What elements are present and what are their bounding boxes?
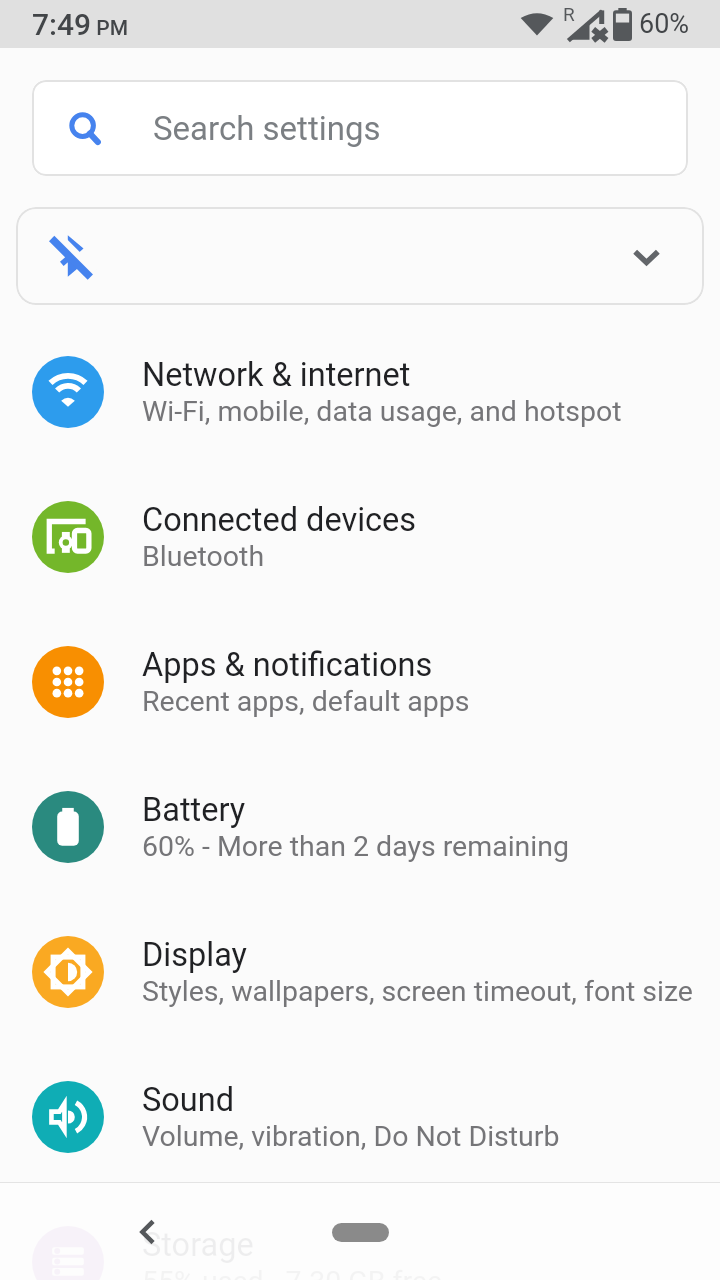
button[interactable] — [134, 1218, 162, 1246]
staticText: Wi-Fi, mobile, data usage, and hotspot — [142, 395, 622, 428]
staticText: 7:49 PM — [32, 7, 129, 42]
staticText: Battery — [142, 791, 246, 829]
staticText: 60% - More than 2 days remaining — [142, 830, 570, 863]
staticText: Display — [142, 936, 247, 974]
button[interactable]: Network & internet — [0, 319, 720, 464]
button[interactable] — [332, 1223, 389, 1242]
button[interactable]: Apps & notifications — [0, 609, 720, 754]
staticText: Styles, wallpapers, screen timeout, font… — [142, 975, 693, 1008]
button[interactable]: Search settings — [32, 80, 688, 176]
button[interactable] — [16, 207, 704, 305]
staticText: Volume, vibration, Do Not Disturb — [142, 1120, 560, 1153]
button[interactable]: Display — [0, 899, 720, 1044]
button[interactable]: Sound — [0, 1044, 720, 1189]
staticText: 55% used - 7.30 GB free — [142, 1265, 443, 1280]
staticText: R — [563, 3, 575, 25]
staticText: Network & internet — [142, 356, 411, 394]
staticText: Bluetooth — [142, 540, 265, 573]
staticText: Sound — [142, 1081, 235, 1119]
staticText: Connected devices — [142, 501, 417, 539]
staticText: Storage — [142, 1226, 254, 1264]
staticText: Recent apps, default apps — [142, 685, 470, 718]
button[interactable]: Storage — [0, 1189, 720, 1280]
button[interactable]: Battery — [0, 754, 720, 899]
staticText: Apps & notifications — [142, 646, 433, 684]
button[interactable]: Connected devices — [0, 464, 720, 609]
staticText: 60% — [639, 8, 690, 40]
staticText: Search settings — [153, 109, 381, 148]
